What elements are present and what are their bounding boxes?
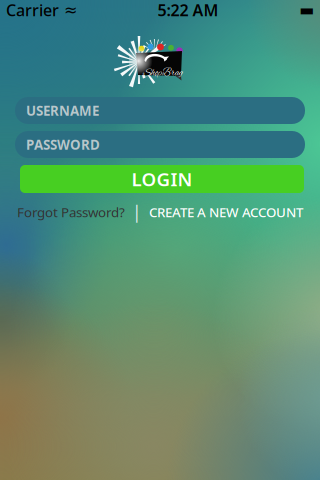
button[interactable]: Forgot Password? [17, 203, 125, 221]
button[interactable]: CREATE A NEW ACCOUNT [149, 203, 303, 221]
staticText: 5:22 AM [157, 0, 218, 21]
staticText: USERNAME [26, 102, 99, 119]
staticText: ▬ [299, 1, 314, 19]
button[interactable]: LOGIN [20, 165, 304, 193]
staticText: Carrier [6, 0, 59, 21]
staticText: Forgot Password? [17, 203, 125, 221]
staticText: | [132, 200, 142, 223]
staticText: ShopBrag [143, 66, 183, 80]
staticText: CREATE A NEW ACCOUNT [149, 203, 303, 221]
staticText: LOGIN [131, 167, 192, 191]
staticText: PASSWORD [26, 136, 100, 153]
staticText: ≈ [64, 1, 77, 19]
